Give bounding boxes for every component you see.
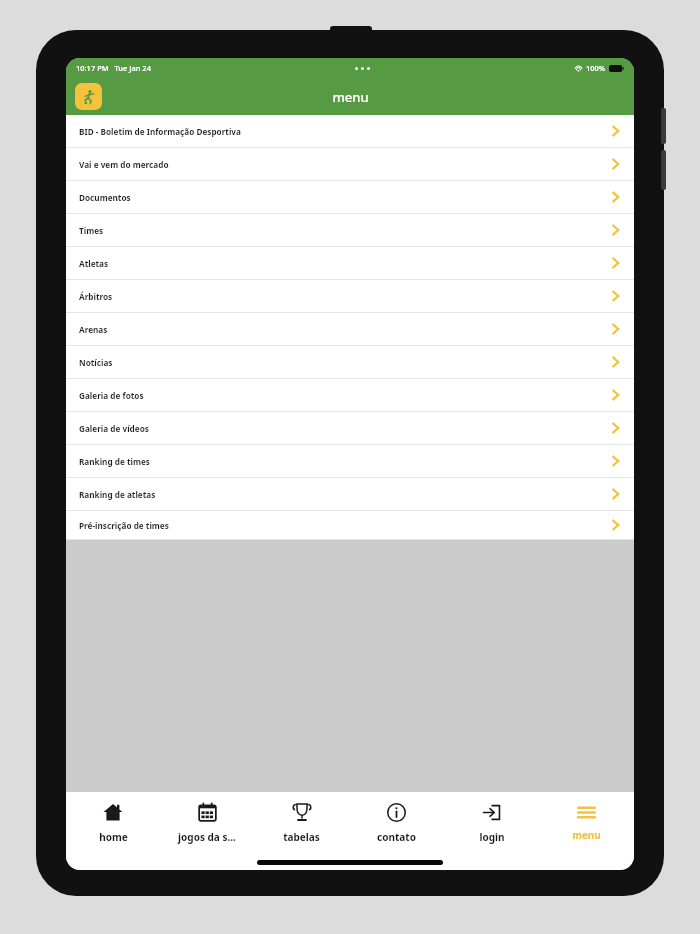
button[interactable]: tabelas <box>254 792 349 854</box>
staticText: Ranking de times <box>79 456 150 467</box>
staticText: menu <box>572 828 601 842</box>
staticText: menu <box>332 88 369 106</box>
button[interactable]: menu <box>539 792 634 854</box>
staticText: Árbitros <box>79 291 113 302</box>
button[interactable]: jogos da s... <box>160 792 254 854</box>
button[interactable]: Ranking de times <box>66 445 634 478</box>
staticText: 100% <box>586 63 606 73</box>
staticText: contato <box>377 830 416 844</box>
staticText: Atletas <box>79 258 109 269</box>
staticText: Vai e vem do mercado <box>79 159 169 170</box>
staticText: Pré-inscrição de times <box>79 520 169 531</box>
staticText: Documentos <box>79 192 131 203</box>
button[interactable]: Vai e vem do mercado <box>66 148 634 181</box>
button[interactable]: App home <box>75 83 102 110</box>
staticText: login <box>479 830 505 844</box>
staticText: Times <box>79 225 104 236</box>
button[interactable]: Árbitros <box>66 280 634 313</box>
staticText: home <box>99 830 128 844</box>
staticText: Galeria de vídeos <box>79 423 149 434</box>
button[interactable]: Ranking de atletas <box>66 478 634 511</box>
button[interactable]: home <box>66 792 160 854</box>
staticText: Galeria de fotos <box>79 390 144 401</box>
button[interactable]: Atletas <box>66 247 634 280</box>
button[interactable]: login <box>444 792 539 854</box>
button[interactable]: Galeria de fotos <box>66 379 634 412</box>
button[interactable]: Arenas <box>66 313 634 346</box>
staticText: Notícias <box>79 357 113 368</box>
staticText: BID - Boletim de Informação Desportiva <box>79 126 241 137</box>
button[interactable]: Pré-inscrição de times <box>66 511 634 540</box>
staticText: Arenas <box>79 324 108 335</box>
button[interactable]: BID - Boletim de Informação Desportiva <box>66 115 634 148</box>
button[interactable]: Notícias <box>66 346 634 379</box>
staticText: 10:17 PM Tue Jan 24 <box>76 63 151 73</box>
button[interactable]: Galeria de vídeos <box>66 412 634 445</box>
staticText: jogos da s... <box>178 830 236 844</box>
staticText: Ranking de atletas <box>79 489 156 500</box>
staticText: tabelas <box>283 830 320 844</box>
button[interactable]: Documentos <box>66 181 634 214</box>
button[interactable]: Times <box>66 214 634 247</box>
button[interactable]: contato <box>349 792 444 854</box>
